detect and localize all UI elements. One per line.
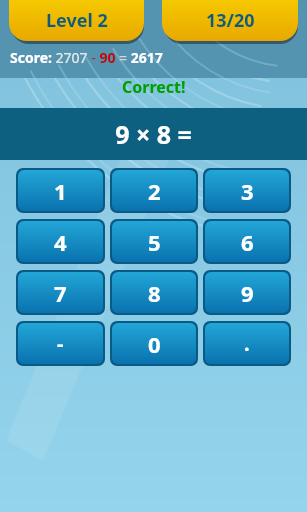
staticText: . (244, 330, 250, 357)
button[interactable]: 1 (18, 170, 103, 211)
staticText: - (57, 330, 64, 357)
staticText: 9 × 8 = (115, 117, 192, 151)
staticText: 5 (148, 227, 161, 257)
button[interactable]: 0 (112, 323, 196, 364)
button[interactable]: 9 (205, 272, 289, 313)
staticText: 9 (241, 278, 254, 308)
button[interactable]: 6 (205, 221, 289, 262)
button[interactable]: - (18, 323, 103, 364)
button[interactable]: Level 2 (9, 0, 144, 41)
staticText: 2 (148, 176, 161, 206)
staticText: 1 (54, 176, 67, 206)
button[interactable]: 5 (112, 221, 196, 262)
button[interactable]: 13/20 (162, 0, 298, 41)
staticText: 7 (54, 278, 67, 308)
button[interactable]: 3 (205, 170, 289, 211)
staticText: 13/20 (206, 8, 255, 33)
staticText: 4 (54, 227, 67, 257)
staticText: 3 (241, 176, 254, 206)
button[interactable]: 7 (18, 272, 103, 313)
staticText: Correct! (122, 76, 186, 98)
staticText: 6 (241, 227, 254, 257)
button[interactable]: 8 (112, 272, 196, 313)
staticText: 0 (148, 329, 161, 359)
button[interactable]: . (205, 323, 289, 364)
staticText: Level 2 (46, 8, 108, 33)
button[interactable]: 2 (112, 170, 196, 211)
button[interactable]: 4 (18, 221, 103, 262)
staticText: 8 (148, 278, 161, 308)
staticText: Score: 2707 - 90 = 2617 (10, 48, 163, 67)
